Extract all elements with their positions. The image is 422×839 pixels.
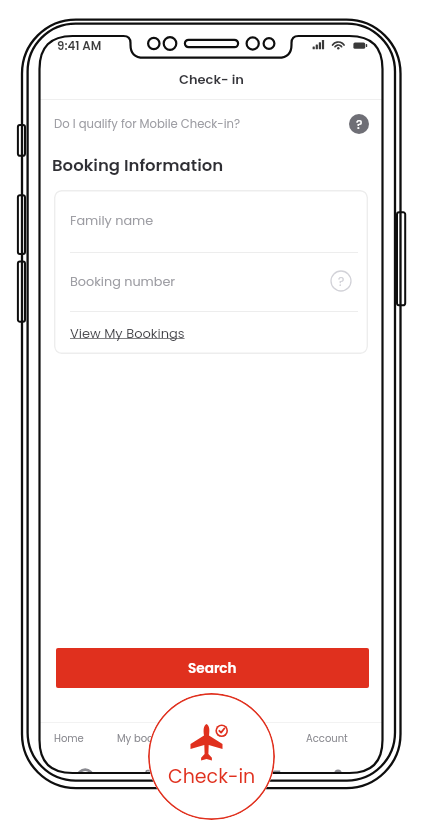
button[interactable]: Chat <box>243 727 306 773</box>
staticText: ? <box>356 116 363 133</box>
staticText: Family name <box>70 212 154 230</box>
button[interactable]: Do I qualify for Mobile Check-in? <box>54 100 369 148</box>
button[interactable]: My bookings <box>117 727 180 773</box>
button[interactable]: Family name <box>70 190 352 251</box>
staticText: Home <box>54 731 84 745</box>
button[interactable]: Booking number <box>70 252 352 312</box>
button[interactable]: What is a booking number <box>330 270 352 292</box>
staticText: Account <box>306 731 348 745</box>
button[interactable]: Account <box>306 727 369 773</box>
staticText: Do I qualify for Mobile Check-in? <box>54 116 241 132</box>
button[interactable]: Search <box>56 648 369 688</box>
button[interactable]: Check-in <box>180 727 243 773</box>
staticText: Check-in <box>168 763 256 786</box>
staticText: My bookings <box>117 731 180 745</box>
staticText: Check-in <box>180 731 226 745</box>
staticText: Search <box>188 659 237 678</box>
staticText: Booking number <box>70 273 176 291</box>
staticText: Check- in <box>179 70 244 88</box>
button[interactable]: Check-in <box>148 693 275 820</box>
button[interactable]: View My Bookings <box>70 324 185 342</box>
staticText: Booking Information <box>52 154 224 177</box>
button[interactable]: Home <box>54 727 117 773</box>
staticText: ? <box>338 273 345 290</box>
staticText: 9:41 AM <box>57 38 102 55</box>
other: Help <box>349 114 369 134</box>
